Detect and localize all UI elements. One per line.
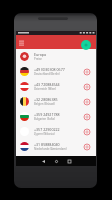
staticText: +357 22900222: [34, 127, 60, 132]
staticText: +359 24921788: [34, 112, 60, 117]
button[interactable]: Call: [84, 69, 90, 75]
button[interactable]: Home: [52, 157, 61, 166]
staticText: Österreich (Wien): [34, 87, 56, 91]
button[interactable]: Call: [84, 99, 90, 105]
button[interactable]: Europa: [16, 49, 96, 64]
staticText: Preise: [34, 57, 42, 61]
button[interactable]: Call: [84, 144, 90, 150]
button[interactable]: Recents: [65, 157, 74, 166]
button[interactable]: +357 22900222: [16, 124, 96, 139]
staticText: Belgien (Brüssel): [34, 102, 56, 106]
staticText: Zypern (Nikosia): [34, 132, 55, 136]
button[interactable]: New call: [81, 40, 91, 50]
staticText: +49 (0)30308 0677: [34, 67, 65, 72]
button[interactable]: +359 24921788: [16, 109, 96, 124]
staticText: +43 720884544: [34, 82, 60, 87]
staticText: Deutschland (Berlin): [34, 72, 60, 76]
staticText: +31 858884040: [34, 142, 60, 147]
button[interactable]: +49 (0)30308 0677: [16, 64, 96, 79]
button[interactable]: Call: [84, 114, 90, 120]
button[interactable]: Call: [84, 129, 90, 135]
button[interactable]: +32 28086385: [16, 94, 96, 109]
staticText: Niederlande (Amsterdam): [34, 147, 67, 151]
button[interactable]: +31 858884040: [16, 139, 96, 154]
button[interactable]: Menu: [18, 39, 25, 46]
button[interactable]: Call: [84, 84, 90, 90]
staticText: Bulgarien (Sofia): [34, 117, 55, 121]
button[interactable]: Back: [39, 157, 48, 166]
staticText: Europa: [34, 52, 47, 57]
staticText: +32 28086385: [34, 97, 58, 102]
button[interactable]: +43 720884544: [16, 79, 96, 94]
